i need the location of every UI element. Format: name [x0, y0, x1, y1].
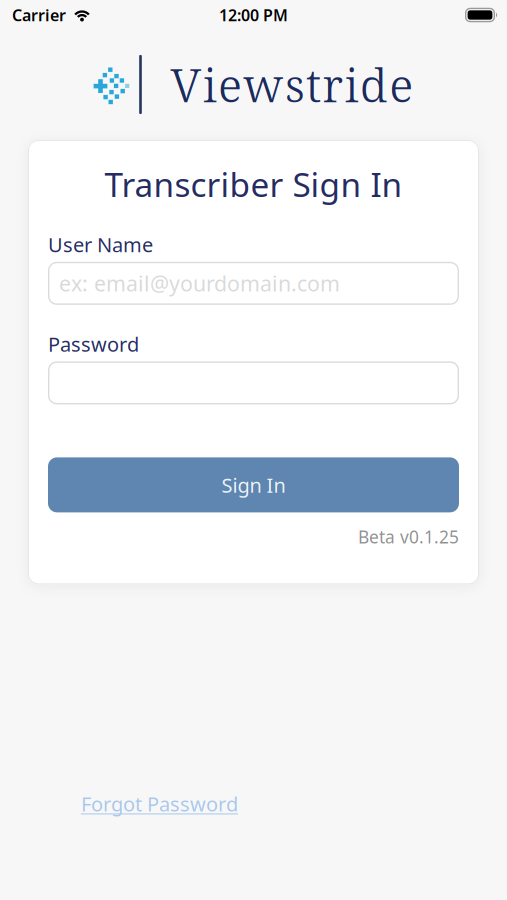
staticText: Transcriber Sign In	[104, 162, 402, 206]
staticText: ex: email@yourdomain.com	[59, 269, 340, 297]
staticText: Carrier	[12, 4, 66, 26]
button[interactable]: Password	[48, 361, 459, 404]
staticText: Beta v0.1.25	[358, 525, 459, 548]
staticText: Password	[48, 331, 139, 357]
staticText: Viewstride	[170, 53, 413, 116]
staticText: Forgot Password	[81, 790, 238, 817]
staticText: 12:00 PM	[219, 4, 288, 26]
button[interactable]: Forgot Password	[81, 790, 238, 817]
staticText: Sign In	[221, 472, 285, 498]
button[interactable]: Sign In	[48, 457, 459, 512]
staticText: User Name	[48, 231, 153, 258]
button[interactable]: User Name	[48, 262, 459, 305]
